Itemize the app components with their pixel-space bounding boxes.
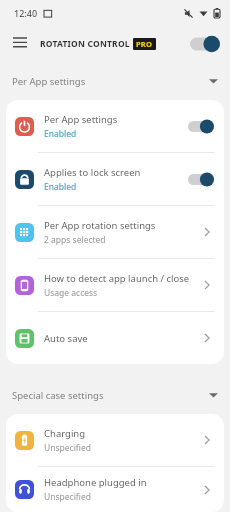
button[interactable]: Headphone plugged in [6, 467, 224, 512]
staticText: Enabled [44, 181, 77, 193]
button[interactable]: Special case settings [0, 382, 230, 408]
button[interactable]: Open navigation menu [4, 28, 36, 60]
staticText: Unspecified [44, 442, 91, 454]
button[interactable]: Charging [6, 414, 224, 466]
staticText: ROTATION CONTROL [40, 38, 130, 50]
button[interactable]: Per App settings [0, 68, 230, 94]
staticText: Auto save [44, 332, 88, 345]
button[interactable]: Applies to lock screen [6, 153, 224, 205]
staticText: PRO [136, 39, 153, 49]
staticText: Per App settings [44, 113, 118, 126]
button[interactable]: Per App settings [6, 100, 224, 152]
staticText: Usage access [44, 287, 98, 299]
staticText: 2 apps selected [44, 234, 106, 246]
staticText: Enabled [44, 128, 77, 140]
staticText: Unspecified [44, 491, 91, 503]
staticText: Per App rotation settings [44, 219, 156, 232]
staticText: Headphone plugged in [44, 476, 147, 489]
staticText: Applies to lock screen [44, 166, 141, 179]
staticText: Special case settings [12, 389, 104, 402]
button[interactable]: How to detect app launch / close [6, 259, 224, 311]
button[interactable]: Toggle setting [188, 172, 214, 187]
button[interactable]: Per App rotation settings [6, 206, 224, 258]
button[interactable]: Toggle setting [188, 119, 214, 134]
staticText: Per App settings [12, 75, 86, 88]
staticText: How to detect app launch / close [44, 272, 190, 285]
button[interactable]: Auto save [6, 312, 224, 364]
button[interactable]: Master rotation toggle [190, 35, 220, 53]
staticText: Charging [44, 427, 86, 440]
staticText: 12:40 [14, 7, 38, 19]
